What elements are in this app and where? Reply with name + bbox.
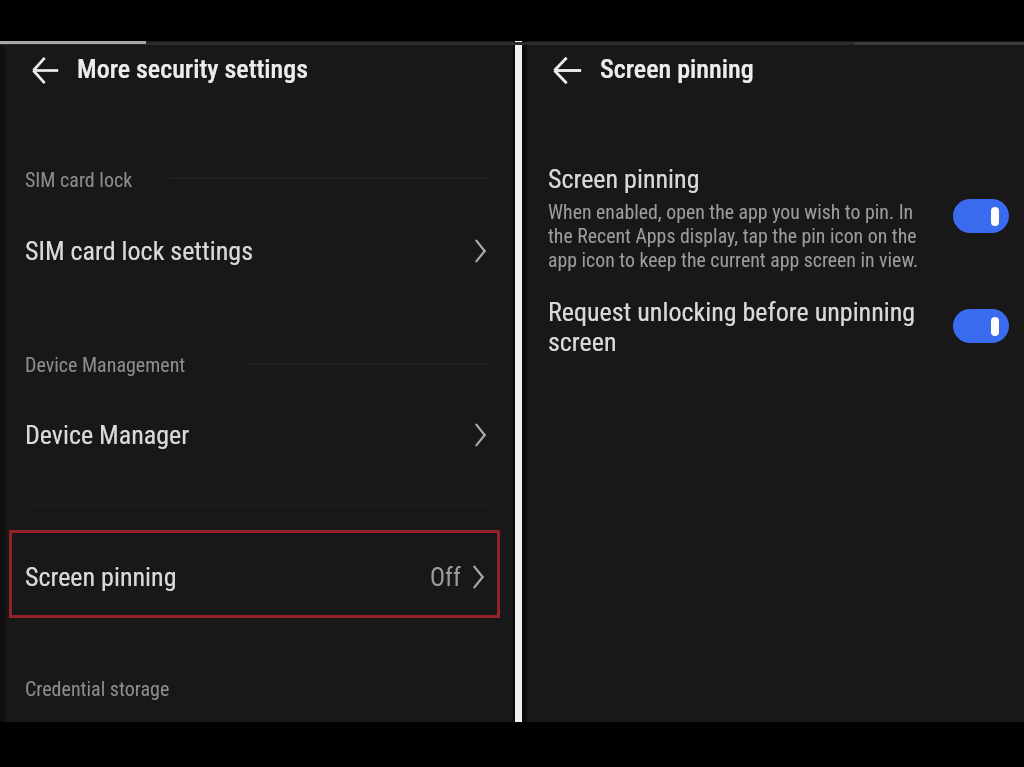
staticText: SIM card lock xyxy=(25,168,133,191)
staticText: Device Management xyxy=(25,353,186,376)
staticText: Screen pinning xyxy=(25,562,177,592)
button[interactable]: Device Manager xyxy=(0,404,513,466)
button[interactable]: SIM card lock settings xyxy=(0,220,513,282)
staticText: Request unlocking before unpinning scree… xyxy=(548,297,916,357)
button[interactable]: Back xyxy=(553,57,582,84)
button[interactable]: Toggle on xyxy=(953,309,1009,343)
button[interactable]: Back xyxy=(32,57,59,84)
staticText: More security settings xyxy=(77,54,309,84)
staticText: SIM card lock settings xyxy=(25,236,253,266)
button[interactable]: Request unlocking before unpinning scree… xyxy=(527,286,1024,401)
button[interactable]: Screen pinning xyxy=(9,530,500,618)
staticText: Credential storage xyxy=(25,677,170,700)
staticText: Screen pinning xyxy=(548,164,700,194)
staticText: Device Manager xyxy=(25,420,190,450)
button[interactable]: Screen pinning xyxy=(527,151,1024,271)
button[interactable]: Toggle on xyxy=(953,199,1009,233)
staticText: Screen pinning xyxy=(600,54,754,84)
staticText: When enabled, open the app you wish to p… xyxy=(548,201,919,271)
staticText: Off xyxy=(430,563,461,592)
